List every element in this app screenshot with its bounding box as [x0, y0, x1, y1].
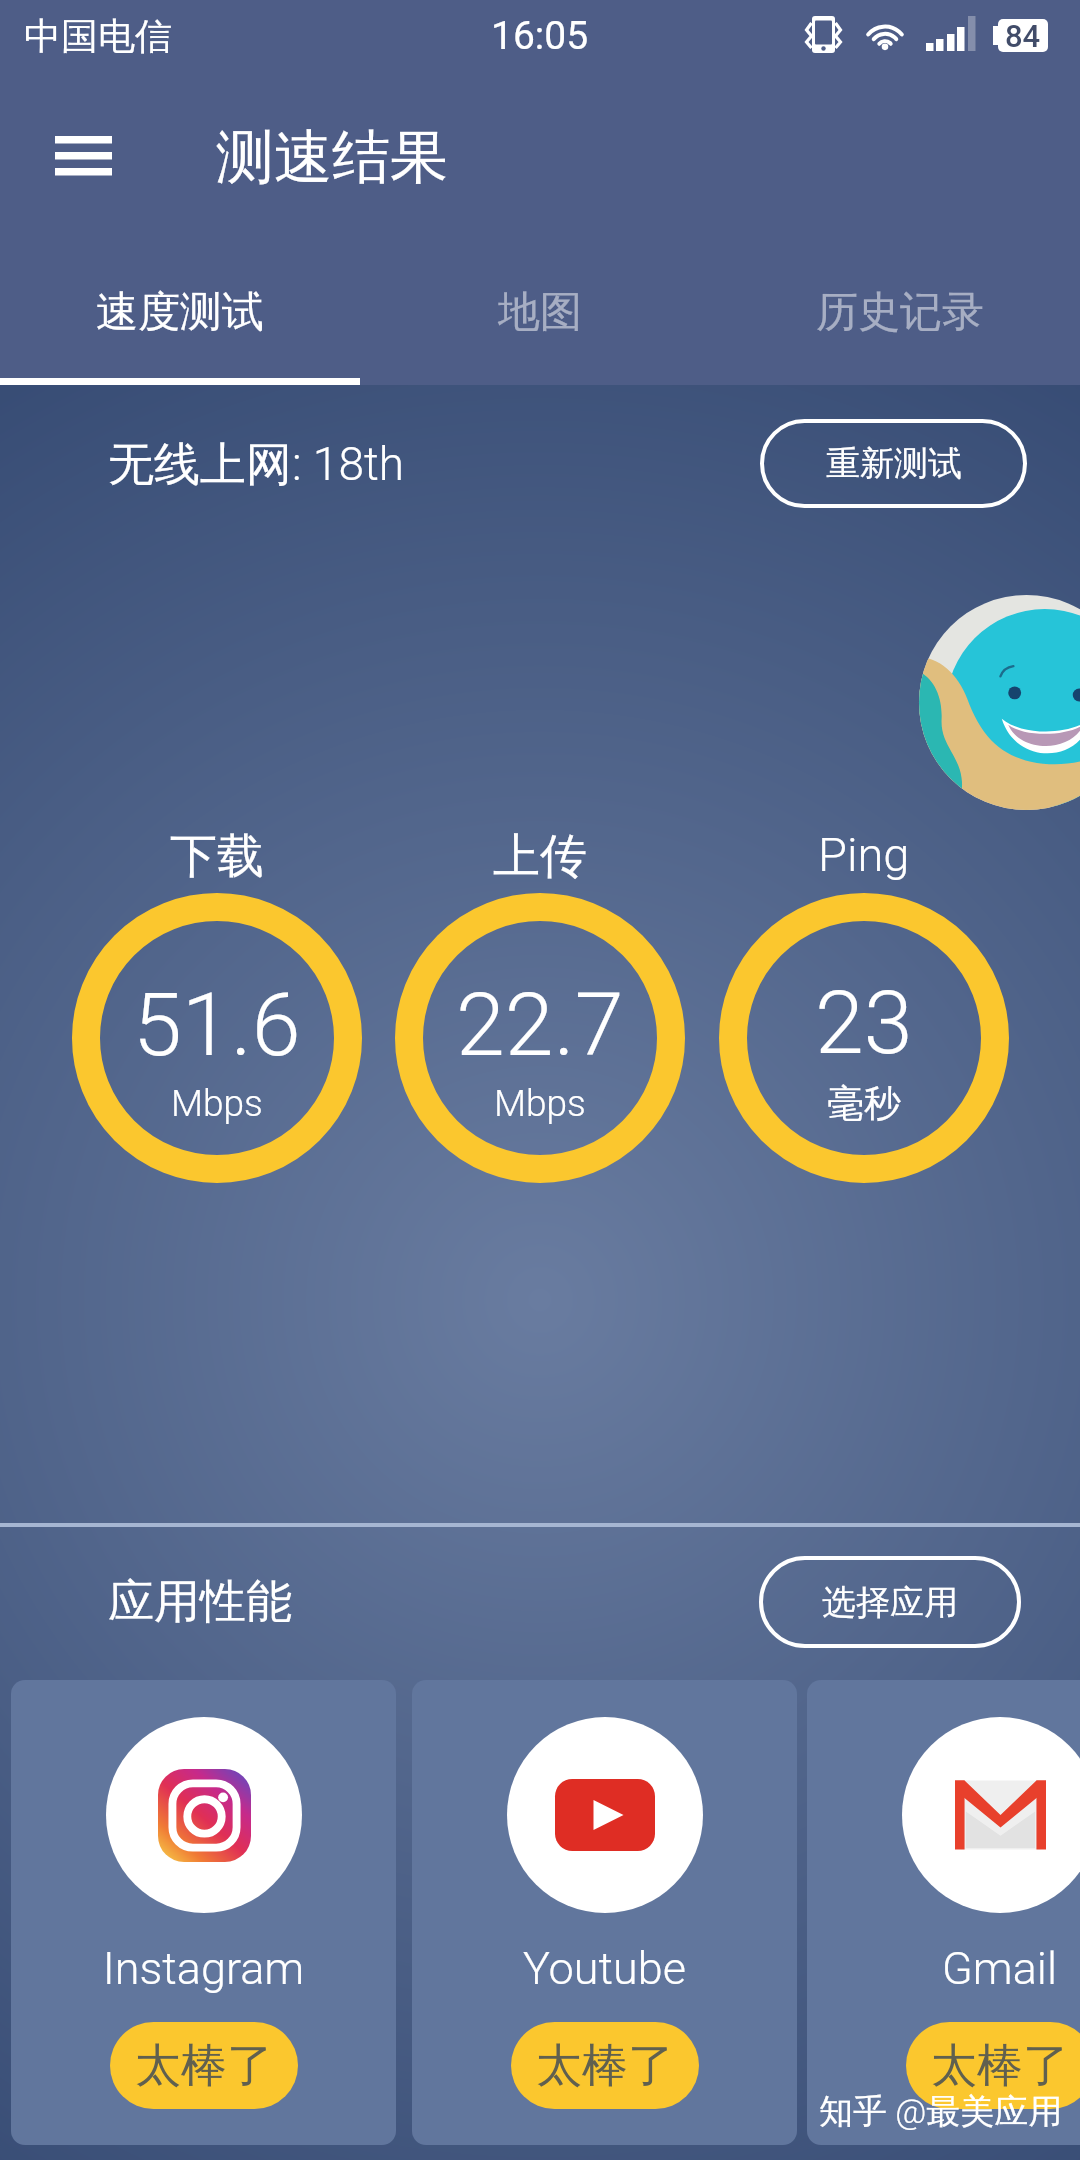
- button[interactable]: Menu: [30, 110, 135, 202]
- staticText: 太棒了: [135, 2037, 273, 2095]
- staticText: 51.6: [133, 973, 301, 1076]
- button[interactable]: Youtube: [412, 1680, 797, 2145]
- staticText: 毫秒: [827, 1080, 901, 1127]
- staticText: Ping: [818, 827, 910, 882]
- staticText: 23: [815, 971, 913, 1074]
- button[interactable]: 太棒了: [511, 2022, 699, 2109]
- staticText: 中国电信: [24, 13, 172, 60]
- button[interactable]: 速度测试: [0, 240, 360, 385]
- staticText: Youtube: [412, 1942, 797, 1995]
- button[interactable]: Instagram: [11, 1680, 396, 2145]
- button[interactable]: 重新测试: [760, 419, 1027, 508]
- staticText: Instagram: [11, 1942, 396, 1995]
- button[interactable]: 选择应用: [759, 1556, 1021, 1648]
- staticText: Mbps: [171, 1082, 263, 1125]
- staticText: 22.7: [456, 973, 624, 1076]
- button[interactable]: 地图: [360, 240, 720, 385]
- button[interactable]: Gmail: [807, 1680, 1080, 2145]
- staticText: 速度测试: [96, 286, 264, 339]
- staticText: 上传: [493, 827, 587, 886]
- staticText: 太棒了: [536, 2037, 674, 2095]
- button[interactable]: 太棒了: [906, 2022, 1080, 2109]
- staticText: Mbps: [494, 1082, 586, 1125]
- button[interactable]: 太棒了: [110, 2022, 298, 2109]
- staticText: 测速结果: [216, 121, 448, 194]
- staticText: 84: [1005, 19, 1041, 51]
- staticText: 下载: [170, 827, 264, 886]
- staticText: 选择应用: [822, 1581, 958, 1624]
- button[interactable]: 历史记录: [720, 240, 1080, 385]
- staticText: 太棒了: [931, 2037, 1069, 2095]
- staticText: 历史记录: [816, 286, 984, 339]
- staticText: 应用性能: [108, 1573, 292, 1631]
- staticText: 重新测试: [826, 442, 962, 485]
- staticText: 无线上网: 18th: [108, 436, 404, 494]
- staticText: 地图: [498, 286, 582, 339]
- staticText: 16:05: [491, 13, 589, 59]
- staticText: Gmail: [807, 1942, 1080, 1995]
- staticText: 知乎 @最美应用: [819, 2090, 1063, 2133]
